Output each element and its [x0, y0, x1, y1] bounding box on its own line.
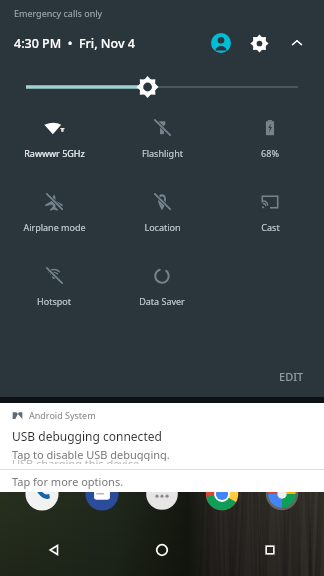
button[interactable]: Flashlight — [108, 116, 216, 168]
button[interactable]: Home — [108, 530, 216, 570]
button[interactable]: Location — [108, 190, 216, 242]
staticText: Rawwwr 5GHz — [24, 147, 85, 159]
button[interactable]: 68% — [216, 116, 324, 168]
staticText: Android System — [29, 409, 96, 421]
button[interactable]: Recents — [216, 530, 324, 570]
staticText: USB charging this device — [12, 456, 140, 464]
button[interactable]: EDIT — [273, 365, 310, 388]
staticText: USB debugging connected — [12, 428, 162, 444]
staticText: EDIT — [279, 369, 304, 384]
staticText: Airplane mode — [23, 221, 86, 233]
button[interactable]: Chrome — [204, 476, 240, 502]
button[interactable]: Rawwwr 5GHz — [0, 116, 108, 168]
button[interactable]: Brightness — [0, 72, 324, 102]
staticText: Tap to disable USB debugging. — [12, 447, 170, 461]
staticText: Flashlight — [142, 147, 183, 159]
button[interactable]: Phone — [24, 476, 60, 502]
staticText: Emergency calls only — [14, 7, 103, 19]
button[interactable]: Airplane mode — [0, 190, 108, 242]
staticText: 4:30 PM • Fri, Nov 4 — [14, 35, 135, 52]
button[interactable]: Photos — [264, 476, 300, 502]
staticText: Location — [144, 221, 181, 233]
button[interactable]: Messages — [84, 476, 120, 502]
staticText: Cast — [261, 221, 280, 233]
button[interactable]: Hotspot — [0, 264, 108, 316]
staticText: Hotspot — [37, 295, 71, 307]
button[interactable]: Settings — [246, 30, 272, 56]
button[interactable]: Data Saver — [108, 264, 216, 316]
button[interactable]: Android System — [0, 403, 324, 461]
button[interactable]: User — [208, 30, 234, 56]
staticText: 68% — [261, 147, 279, 159]
button[interactable]: Tap for more options. — [0, 470, 324, 492]
button[interactable]: All apps — [144, 476, 180, 502]
staticText: Data Saver — [139, 295, 185, 307]
button[interactable]: Cast — [216, 190, 324, 242]
button[interactable]: Back — [0, 530, 108, 570]
button[interactable]: Collapse — [284, 30, 310, 56]
staticText: Tap for more options. — [12, 474, 124, 489]
